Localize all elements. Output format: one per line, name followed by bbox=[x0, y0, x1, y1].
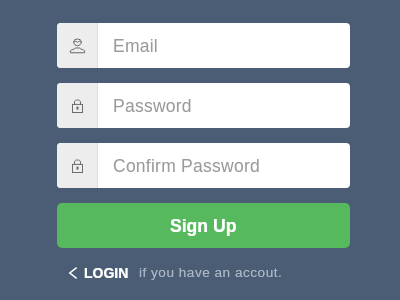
button[interactable]: Login bbox=[67, 263, 129, 283]
button[interactable]: Password bbox=[57, 83, 350, 128]
button[interactable]: Email bbox=[57, 23, 350, 68]
button[interactable]: Sign Up bbox=[57, 203, 350, 248]
button[interactable]: Confirm Password bbox=[57, 143, 350, 188]
staticText: Password bbox=[113, 96, 192, 116]
staticText: Sign Up bbox=[170, 216, 237, 236]
staticText: Email bbox=[113, 36, 159, 56]
staticText: LOGIN bbox=[84, 265, 129, 281]
staticText: if you have an accout. bbox=[139, 265, 283, 280]
staticText: Confirm Password bbox=[113, 156, 260, 176]
